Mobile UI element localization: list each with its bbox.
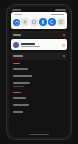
button[interactable]	[13, 68, 65, 70]
button[interactable]	[13, 75, 65, 77]
button[interactable]: Expand notification	[61, 43, 65, 47]
button[interactable]: Do not disturb	[30, 18, 38, 26]
button[interactable]	[13, 82, 65, 87]
button[interactable]	[13, 111, 65, 113]
button[interactable]	[11, 31, 67, 38]
button[interactable]: Expand notification	[11, 39, 67, 50]
button[interactable]: Bluetooth	[21, 18, 29, 26]
button[interactable]: Battery saver	[57, 18, 65, 26]
button[interactable]: Wi-Fi	[13, 19, 20, 26]
button[interactable]: Auto-rotate	[48, 18, 56, 26]
button[interactable]	[13, 104, 65, 106]
button[interactable]	[11, 52, 67, 60]
button[interactable]: Flashlight	[39, 18, 47, 26]
button[interactable]	[13, 97, 65, 99]
